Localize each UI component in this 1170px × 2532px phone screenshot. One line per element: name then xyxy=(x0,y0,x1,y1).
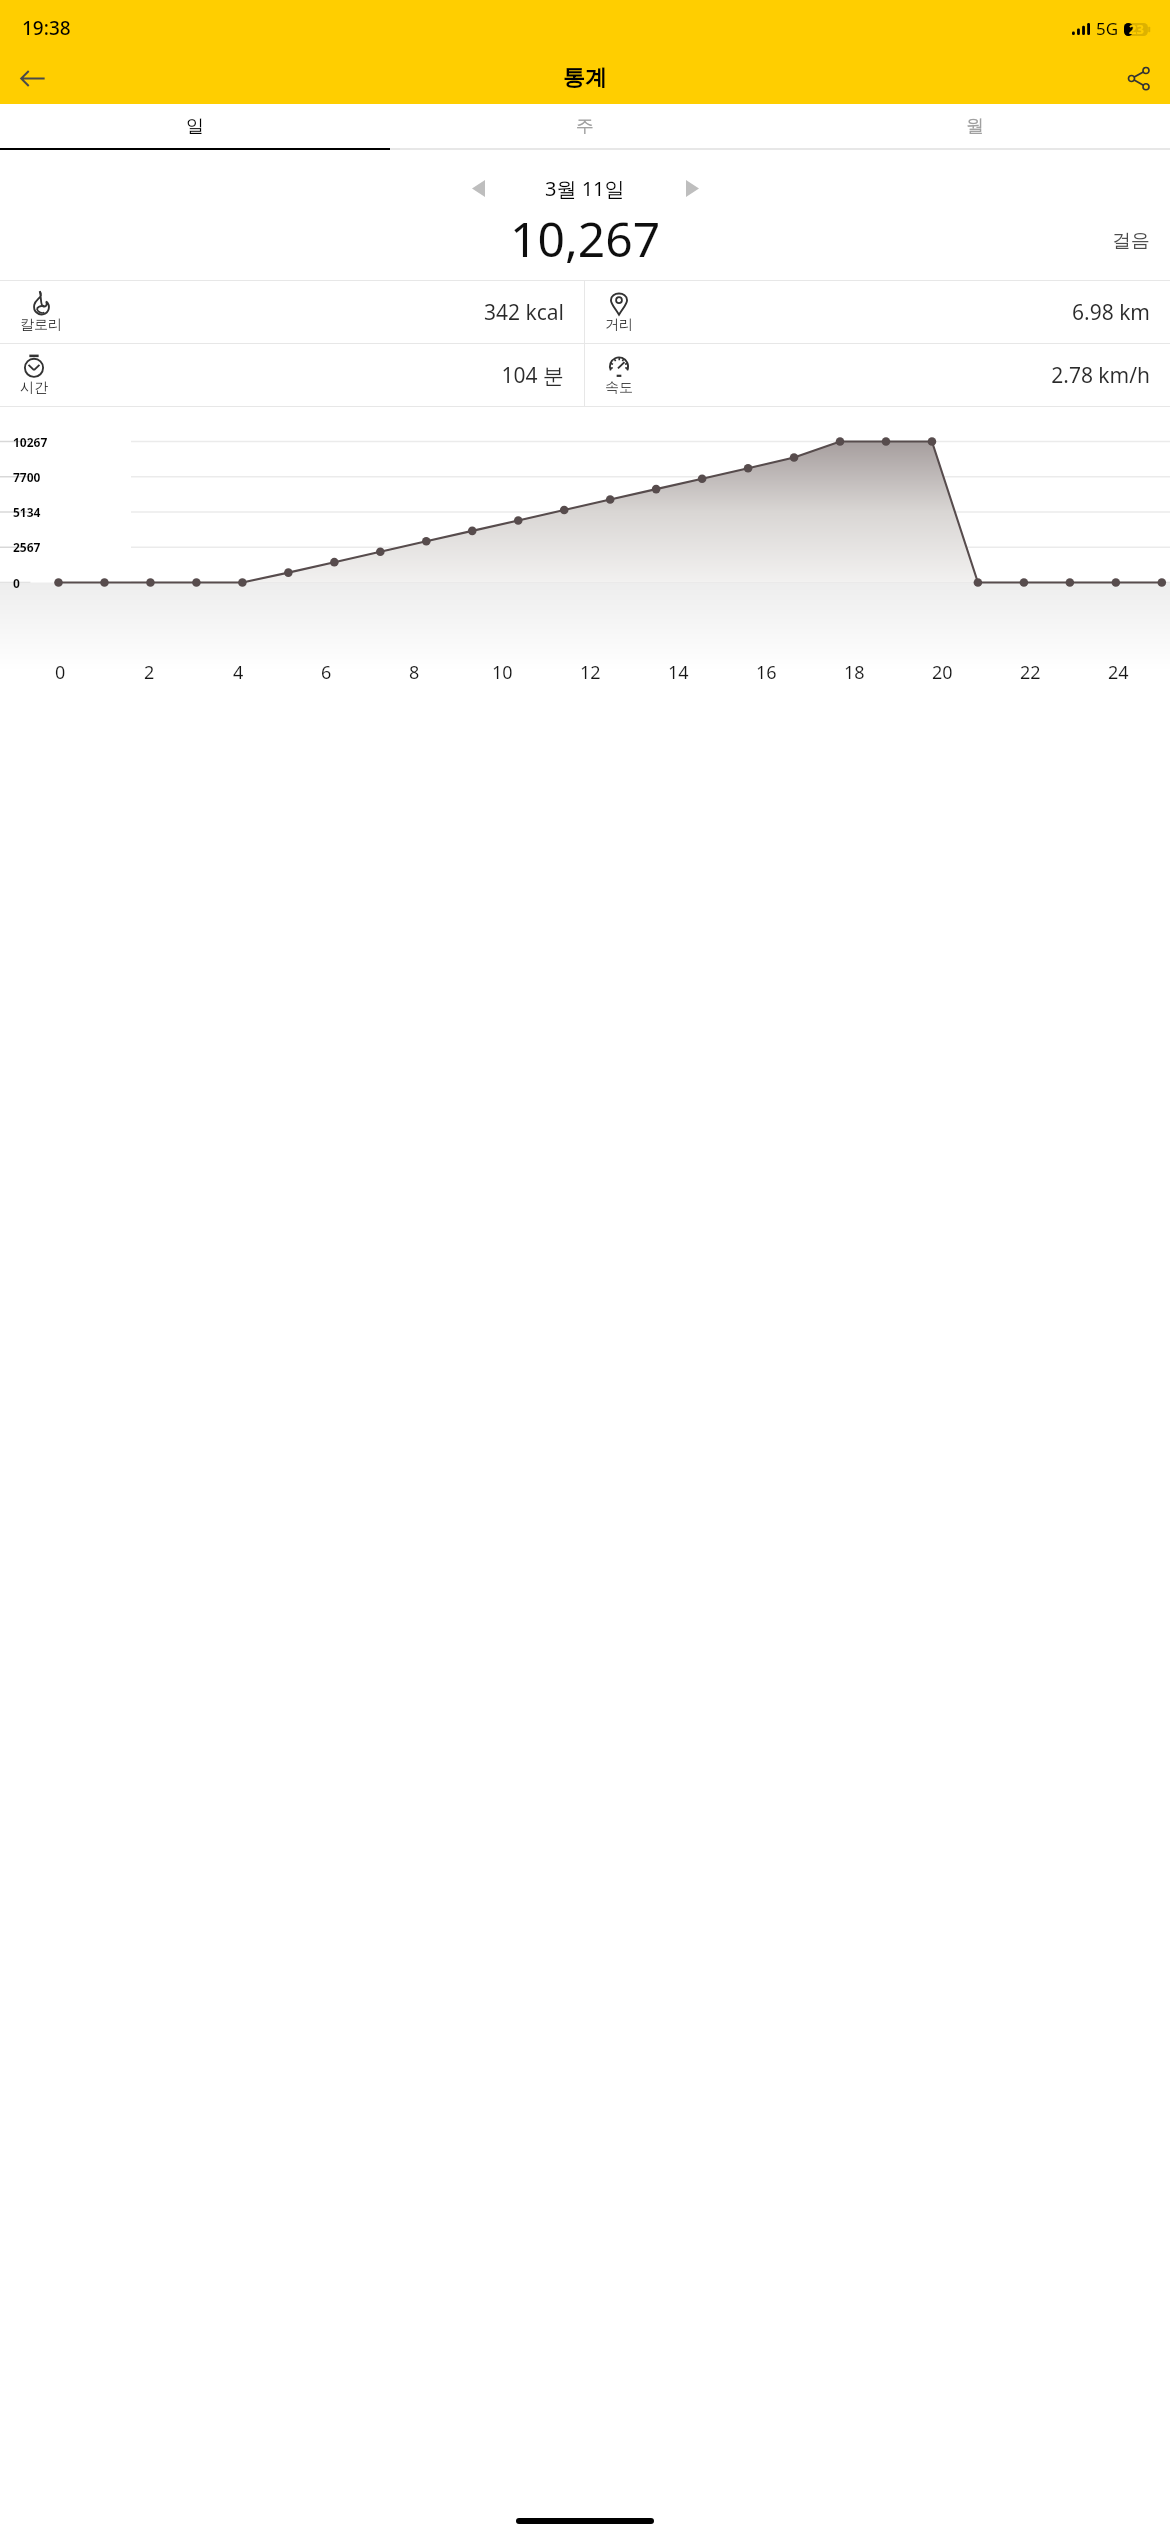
staticText: 104 분 xyxy=(48,361,564,390)
button[interactable]: Previous day xyxy=(456,170,500,206)
staticText: 14 xyxy=(668,660,689,685)
staticText: 2567 xyxy=(13,539,41,555)
staticText: 18 xyxy=(844,660,865,685)
staticText: 5134 xyxy=(13,504,41,520)
staticText: 월 xyxy=(966,115,984,138)
staticText: 12 xyxy=(580,660,601,685)
staticText: 342 kcal xyxy=(62,298,564,327)
staticText: 22 xyxy=(1020,660,1041,685)
staticText: 0 xyxy=(13,575,20,591)
button[interactable]: 거리 xyxy=(585,281,1170,343)
staticText: 16 xyxy=(756,660,777,685)
button[interactable]: 칼로리 xyxy=(0,281,584,343)
button[interactable]: 속도 xyxy=(585,344,1170,406)
staticText: 24 xyxy=(1108,660,1129,685)
button[interactable]: Share xyxy=(1114,54,1162,102)
staticText: 속도 xyxy=(605,379,633,397)
staticText: 23 xyxy=(1129,20,1144,38)
button[interactable]: 시간 xyxy=(0,344,584,406)
staticText: 거리 xyxy=(605,316,633,334)
staticText: 10267 xyxy=(13,434,48,450)
staticText: 19:38 xyxy=(22,15,71,41)
button[interactable]: 일 xyxy=(0,104,390,148)
staticText: 10 xyxy=(492,660,513,685)
staticText: 5G xyxy=(1096,17,1119,40)
staticText: 2.78 km/h xyxy=(633,361,1150,390)
button[interactable]: 3월 11일 xyxy=(500,175,670,202)
staticText: 0 xyxy=(55,660,66,685)
staticText: 6 xyxy=(321,660,332,685)
staticText: 주 xyxy=(576,115,594,138)
staticText: 3월 11일 xyxy=(545,175,625,202)
button[interactable]: Back xyxy=(8,54,56,102)
button[interactable]: 주 xyxy=(390,104,780,148)
staticText: 7700 xyxy=(13,469,41,485)
staticText: 8 xyxy=(409,660,420,685)
staticText: 일 xyxy=(186,115,204,138)
staticText: 2 xyxy=(144,660,155,685)
staticText: 4 xyxy=(233,660,244,685)
staticText: 6.98 km xyxy=(633,298,1150,327)
staticText: 20 xyxy=(932,660,953,685)
staticText: 시간 xyxy=(20,379,48,397)
button[interactable]: 월 xyxy=(780,104,1170,148)
staticText: 10,267 xyxy=(510,206,661,268)
staticText: 칼로리 xyxy=(20,316,62,334)
button[interactable]: Next day xyxy=(670,170,714,206)
staticText: 통계 xyxy=(563,64,607,92)
staticText: 걸음 xyxy=(1112,229,1150,253)
